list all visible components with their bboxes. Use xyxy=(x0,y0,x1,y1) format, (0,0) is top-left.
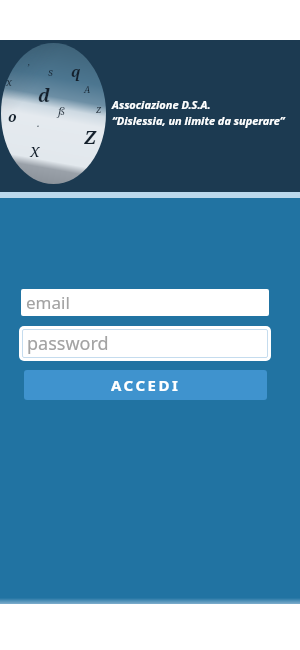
staticText: Z xyxy=(84,125,96,150)
staticText: ß xyxy=(58,103,65,118)
staticText: x xyxy=(6,74,13,89)
staticText: ACCEDI xyxy=(111,375,181,395)
staticText: q xyxy=(71,61,81,81)
staticText: s xyxy=(48,64,54,79)
button[interactable]: password xyxy=(19,326,271,361)
staticText: . xyxy=(37,115,40,130)
button[interactable]: email xyxy=(21,289,269,316)
staticText: x xyxy=(30,138,40,163)
staticText: d xyxy=(38,83,50,108)
staticText: password xyxy=(27,331,109,356)
staticText: A xyxy=(84,83,91,95)
staticText: z xyxy=(96,101,102,116)
staticText: “Dislessia, un limite da superare” xyxy=(112,113,285,128)
button[interactable]: ACCEDI xyxy=(24,370,267,400)
staticText: email xyxy=(26,291,70,314)
staticText: o xyxy=(8,107,17,126)
staticText: ʼ xyxy=(27,61,30,73)
staticText: Associazione D.S.A. xyxy=(112,97,211,112)
